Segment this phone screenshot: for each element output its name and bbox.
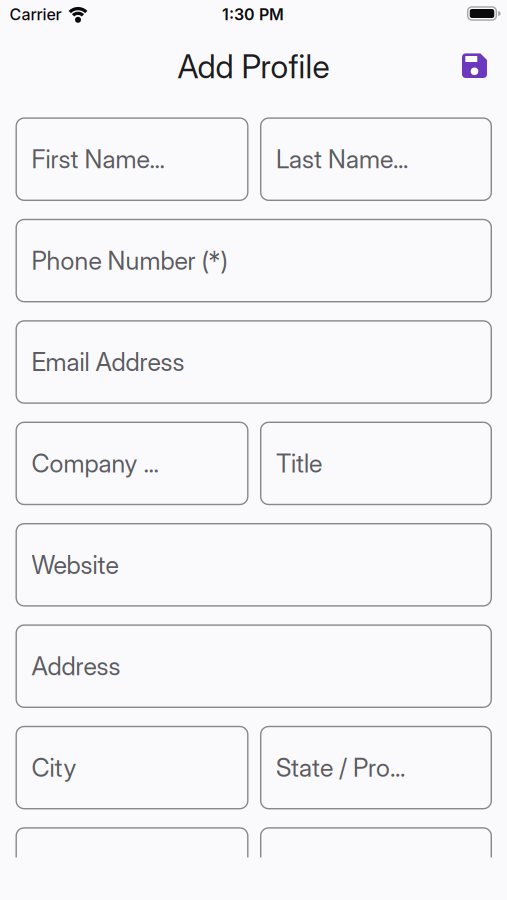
staticText: First Name...	[31, 144, 164, 174]
button[interactable]: Title	[260, 422, 492, 505]
button[interactable]: Text field	[15, 827, 248, 900]
staticText: Address	[31, 651, 120, 681]
staticText: 1:30 PM	[222, 5, 284, 24]
button[interactable]: Website	[15, 523, 492, 607]
staticText: Company ...	[31, 448, 158, 478]
button[interactable]: Phone Number (*)	[15, 219, 492, 302]
staticText: State / Pro...	[276, 752, 405, 783]
button[interactable]: Email Address	[15, 320, 492, 404]
staticText: City	[31, 752, 76, 783]
button[interactable]: Company ...	[15, 422, 248, 505]
button[interactable]: Address	[15, 624, 492, 708]
button[interactable]: First Name...	[15, 117, 248, 201]
button[interactable]: Last Name...	[260, 117, 492, 201]
staticText: Title	[276, 448, 322, 478]
button[interactable]: Save	[0, 0, 507, 100]
button[interactable]: City	[15, 726, 248, 809]
button[interactable]: Text field	[260, 827, 492, 900]
button[interactable]: State / Pro...	[260, 726, 492, 809]
staticText: Carrier	[9, 5, 61, 24]
staticText: Website	[31, 550, 118, 580]
staticText: Phone Number (*)	[31, 245, 227, 276]
staticText: Email Address	[31, 347, 184, 377]
staticText: Last Name...	[276, 144, 408, 174]
staticText: Add Profile	[177, 47, 329, 86]
